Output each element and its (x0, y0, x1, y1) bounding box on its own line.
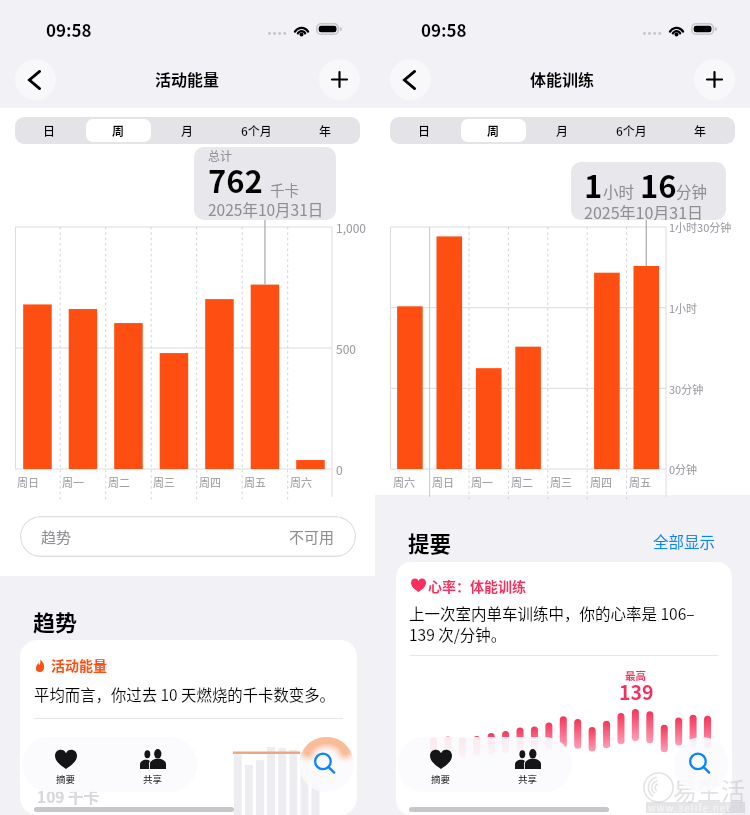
button[interactable]: Search (674, 737, 729, 792)
button[interactable]: 6个月 (224, 119, 289, 142)
button[interactable]: 周 (86, 119, 151, 142)
button[interactable]: 全部显示 (653, 530, 716, 552)
button[interactable]: Back (390, 59, 431, 100)
staticText: 活动能量 (51, 655, 107, 675)
staticText: 共享 (518, 772, 538, 786)
button[interactable]: 活动能量 (20, 640, 357, 815)
staticText: 109 千卡 (37, 785, 99, 807)
staticText: 体能训练 (530, 67, 595, 90)
staticText: 139 次/分钟。 (409, 623, 507, 645)
staticText: 趋势 (41, 526, 72, 548)
staticText: 不可用 (289, 526, 335, 548)
staticText: 1,000 (336, 219, 366, 236)
button[interactable]: Add (319, 59, 360, 100)
staticText: 周二 (108, 474, 130, 490)
button[interactable]: 趋势 (20, 516, 356, 557)
staticText: 09:58 (421, 17, 467, 42)
staticText: 摘要 (431, 772, 451, 786)
staticText: 心率：体能训练 (428, 576, 526, 596)
button[interactable]: 年 (668, 119, 733, 142)
staticText: 全部显示 (653, 530, 716, 552)
staticText: 年 (319, 122, 332, 139)
staticText: 周三 (153, 474, 175, 490)
button[interactable]: 周 (461, 119, 526, 142)
staticText: 趋势 (33, 605, 78, 637)
staticText: 提要 (408, 527, 452, 558)
staticText: 年 (694, 122, 707, 139)
staticText: 周日 (17, 474, 39, 490)
staticText: 周六 (393, 474, 415, 490)
staticText: 09:58 (46, 17, 92, 42)
button[interactable]: 日 (17, 119, 82, 142)
staticText: 上一次室内单车训练中，你的心率是 106– (409, 602, 695, 624)
staticText: 共享 (143, 772, 163, 786)
staticText: 周一 (62, 474, 84, 490)
staticText: 小时 (603, 180, 635, 202)
button[interactable]: 共享 (484, 737, 572, 792)
button[interactable]: 月 (155, 119, 220, 142)
staticText: 总计 (208, 147, 233, 164)
staticText: 月 (556, 122, 569, 139)
button[interactable]: 日 (392, 119, 457, 142)
staticText: 易生活 (673, 772, 745, 807)
button[interactable]: 6个月 (599, 119, 664, 142)
staticText: 周日 (432, 474, 454, 490)
button[interactable]: 心率：体能训练 (396, 562, 732, 815)
staticText: 2025年10月31日 (584, 200, 704, 220)
staticText: 日 (418, 122, 431, 139)
staticText: 周一 (471, 474, 493, 490)
staticText: 周四 (199, 474, 221, 490)
staticText: 1 (584, 162, 603, 207)
button[interactable]: Search (299, 737, 354, 792)
staticText: 周四 (590, 474, 612, 490)
staticText: 周三 (550, 474, 572, 490)
staticText: 30分钟 (669, 381, 704, 397)
staticText: 分钟 (676, 180, 708, 202)
staticText: 16 (640, 162, 677, 207)
staticText: 日 (43, 122, 56, 139)
staticText: 0 (336, 461, 343, 478)
staticText: 平均而言，你过去 10 天燃烧的千卡数变多。 (34, 683, 336, 705)
staticText: 周二 (511, 474, 533, 490)
button[interactable]: 月 (530, 119, 595, 142)
staticText: 摘要 (56, 772, 76, 786)
staticText: 活动能量 (155, 67, 220, 90)
staticText: 最高 (625, 668, 646, 683)
staticText: 6个月 (241, 122, 272, 139)
staticText: 2025年10月31日 (208, 198, 324, 220)
button[interactable]: 共享 (109, 737, 197, 792)
staticText: 周五 (629, 474, 651, 490)
staticText: 1小时 (669, 300, 698, 316)
staticText: 周 (112, 122, 125, 139)
staticText: 139 (619, 677, 654, 705)
staticText: 周 (487, 122, 500, 139)
staticText: 1小时30分钟 (669, 219, 732, 235)
staticText: 500 (336, 340, 356, 357)
button[interactable]: 摘要 (397, 737, 484, 792)
staticText: 762 (208, 157, 263, 202)
staticText: 千卡 (270, 179, 299, 200)
staticText: 6个月 (616, 122, 647, 139)
staticText: www.3elife.net (648, 801, 732, 815)
button[interactable]: 摘要 (22, 737, 109, 792)
staticText: 月 (181, 122, 194, 139)
staticText: 0分钟 (669, 461, 698, 477)
button[interactable]: Add (694, 59, 735, 100)
button[interactable]: Back (15, 59, 56, 100)
staticText: 周六 (290, 474, 312, 490)
staticText: 周五 (244, 474, 266, 490)
button[interactable]: 年 (293, 119, 358, 142)
